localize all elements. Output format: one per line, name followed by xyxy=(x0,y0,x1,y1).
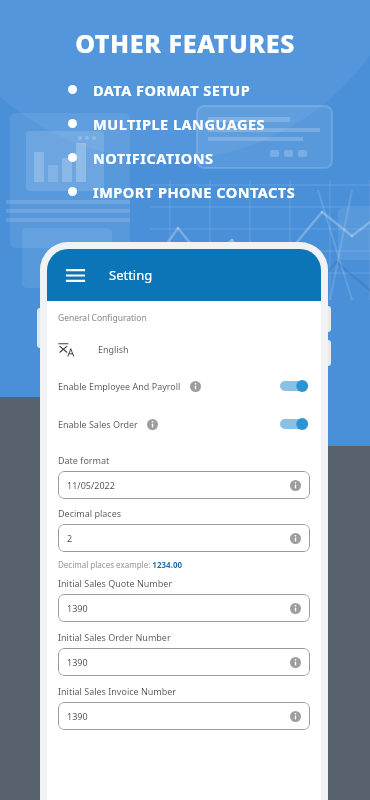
staticText: MULTIPLE LANGUAGES xyxy=(93,114,266,133)
staticText: Initial Sales Quote Number xyxy=(58,577,173,589)
staticText: English xyxy=(98,343,129,355)
staticText: 1390 xyxy=(67,710,88,722)
staticText: IMPORT PHONE CONTACTS xyxy=(93,182,296,201)
other: Language xyxy=(58,341,74,357)
staticText: DATA FORMAT SETUP xyxy=(93,80,251,99)
staticText: Initial Sales Invoice Number xyxy=(58,685,177,697)
button[interactable]: 1390 xyxy=(58,648,310,676)
staticText: 11/05/2022 xyxy=(67,479,115,491)
staticText: Setting xyxy=(109,266,153,284)
button[interactable]: 11/05/2022 xyxy=(58,471,310,499)
staticText: Enable Sales Order xyxy=(58,418,138,430)
staticText: Date format xyxy=(58,454,110,466)
button[interactable]: Enable Employee And Payroll xyxy=(58,376,310,396)
button[interactable]: 1390 xyxy=(58,702,310,730)
button[interactable]: 2 xyxy=(58,524,310,552)
button[interactable]: Open navigation menu xyxy=(60,260,90,290)
staticText: NOTIFICATIONS xyxy=(93,148,214,167)
staticText: Decimal places example: 1234.00 xyxy=(58,559,183,570)
staticText: Decimal places xyxy=(58,507,122,519)
staticText: OTHER FEATURES xyxy=(0,26,370,60)
button[interactable]: 1390 xyxy=(58,594,310,622)
staticText: Initial Sales Order Number xyxy=(58,631,171,643)
staticText: 1390 xyxy=(67,656,88,668)
staticText: 2 xyxy=(67,532,73,544)
staticText: Enable Employee And Payroll xyxy=(58,380,181,392)
button[interactable]: Enable Sales Order xyxy=(58,414,310,434)
button[interactable]: Language xyxy=(58,338,310,360)
staticText: 1390 xyxy=(67,602,88,614)
button[interactable]: Toggle Enable Employee And Payroll xyxy=(280,378,310,394)
staticText: General Configuration xyxy=(58,312,147,324)
button[interactable]: Toggle Enable Sales Order xyxy=(280,416,310,432)
